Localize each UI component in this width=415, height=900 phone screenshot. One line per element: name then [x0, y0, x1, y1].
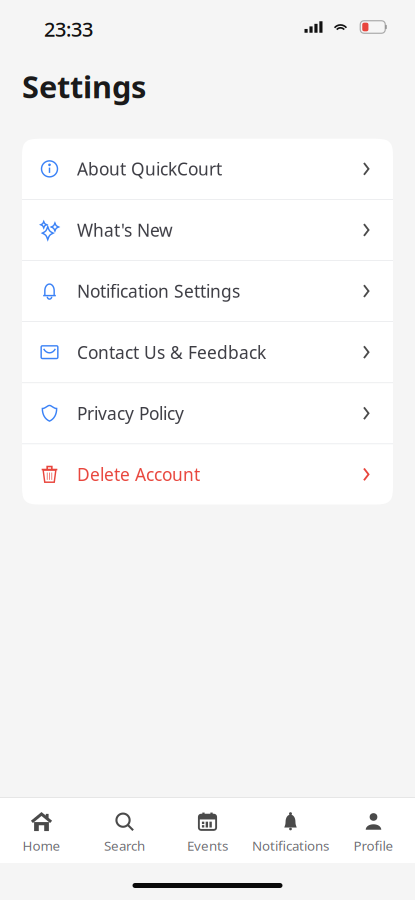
button[interactable]: Delete Account: [22, 444, 393, 504]
staticText: Events: [187, 837, 228, 854]
staticText: Search: [104, 837, 145, 854]
button[interactable]: Notification Settings: [22, 261, 393, 321]
staticText: Profile: [353, 837, 393, 854]
staticText: Notifications: [252, 837, 329, 854]
staticText: About QuickCourt: [77, 157, 222, 180]
button[interactable]: What's New: [22, 200, 393, 260]
button[interactable]: Notifications: [249, 801, 332, 860]
button[interactable]: Events: [166, 801, 249, 860]
staticText: Settings: [22, 66, 146, 107]
staticText: 23:33: [44, 16, 93, 42]
button[interactable]: Search: [83, 801, 166, 860]
staticText: Home: [22, 837, 60, 854]
staticText: What's New: [77, 218, 173, 241]
staticText: Privacy Policy: [77, 402, 184, 425]
staticText: Delete Account: [77, 463, 200, 486]
button[interactable]: Contact Us & Feedback: [22, 322, 393, 382]
button[interactable]: Profile: [332, 801, 415, 860]
staticText: Notification Settings: [77, 280, 240, 303]
button[interactable]: About QuickCourt: [22, 139, 393, 199]
staticText: Contact Us & Feedback: [77, 341, 266, 364]
button[interactable]: Privacy Policy: [22, 383, 393, 443]
button[interactable]: Home: [0, 801, 83, 860]
